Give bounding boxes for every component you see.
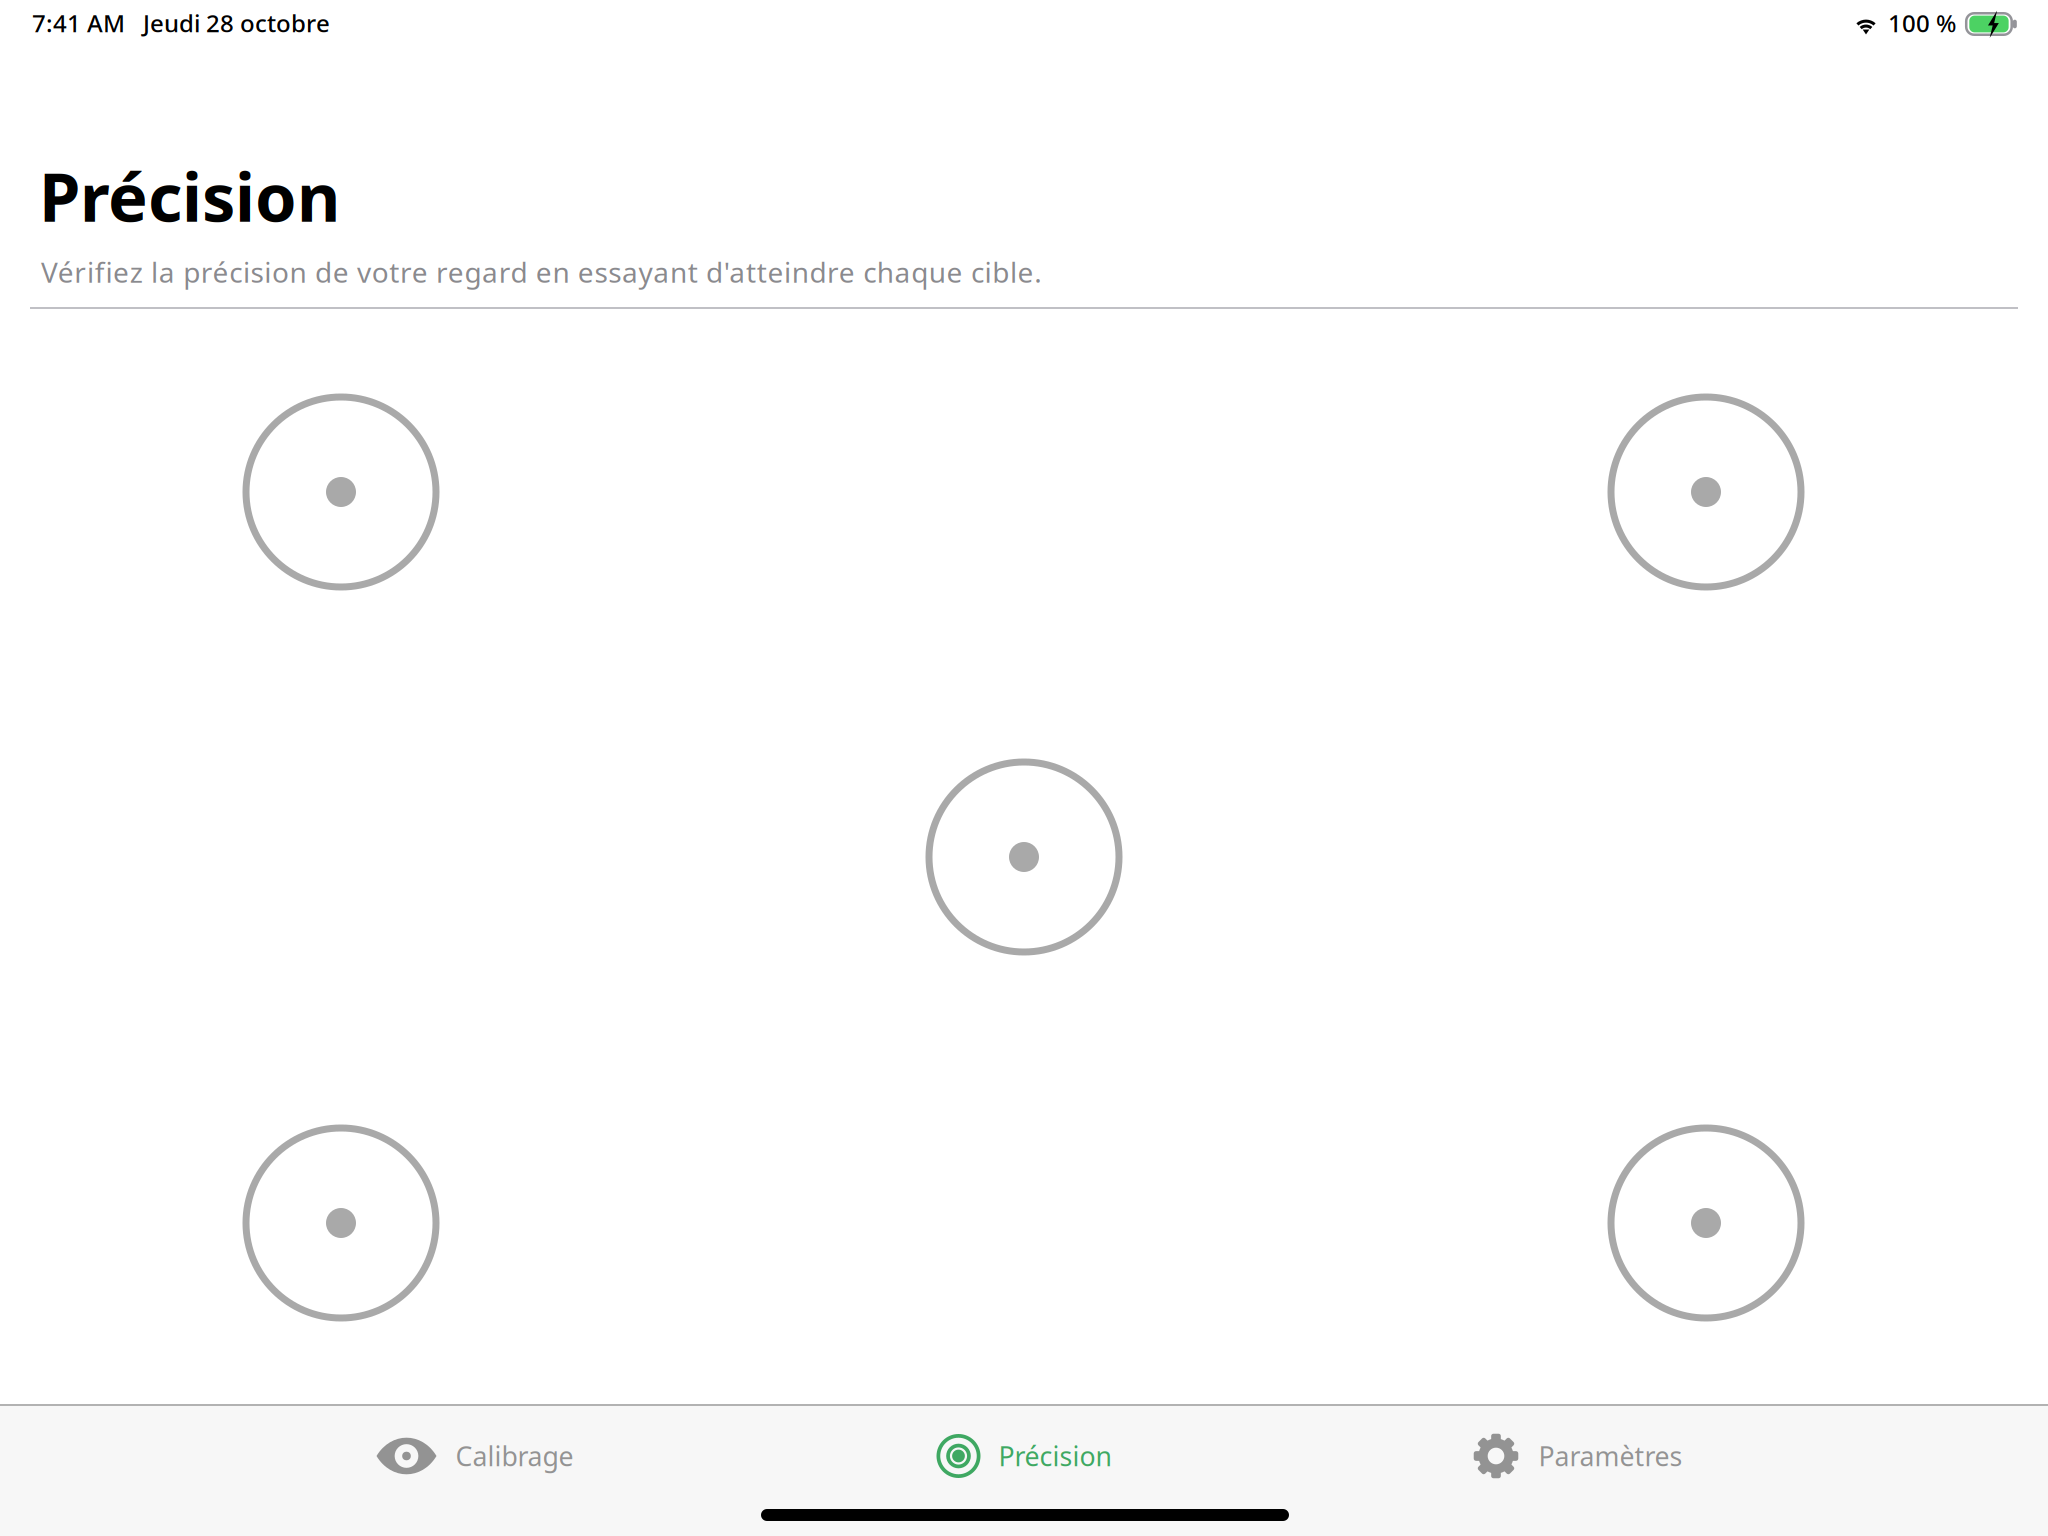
staticText: 7:41 AM Jeudi 28 octobre <box>32 7 330 39</box>
staticText: Paramètres <box>1538 1438 1682 1474</box>
staticText: Précision <box>998 1438 1111 1474</box>
staticText: Calibrage <box>455 1438 573 1474</box>
staticText: Vérifiez la précision de votre regard en… <box>41 253 1042 291</box>
button[interactable]: Précision <box>764 1408 1284 1504</box>
staticText: Précision <box>39 152 340 240</box>
button[interactable]: Paramètres <box>1318 1408 1838 1504</box>
staticText: 100 % <box>1888 7 1956 39</box>
button[interactable]: Calibrage <box>215 1408 735 1504</box>
